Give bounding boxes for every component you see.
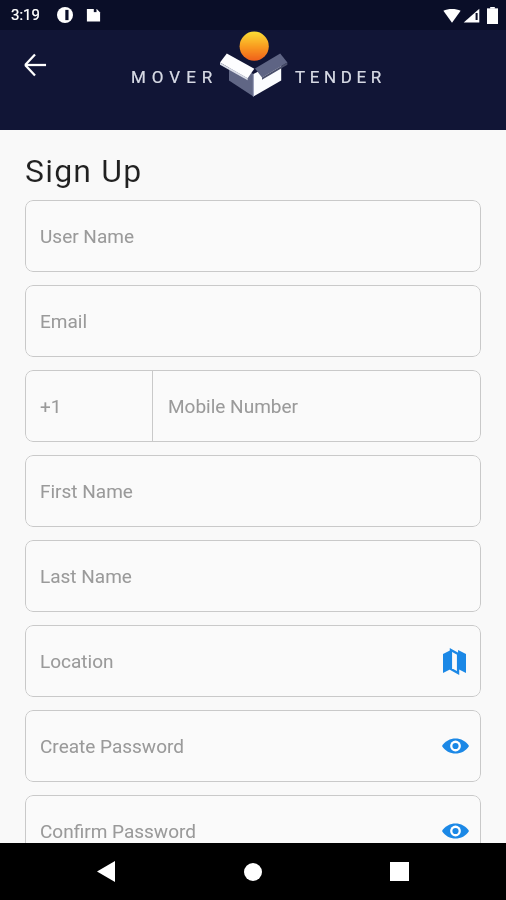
- staticText: +1: [40, 395, 62, 417]
- button[interactable]: Back: [15, 45, 55, 85]
- button[interactable]: Pick location on map: [439, 646, 469, 676]
- button[interactable]: Email: [25, 285, 481, 357]
- button[interactable]: Home: [223, 843, 283, 900]
- staticText: Last Name: [40, 565, 469, 587]
- button[interactable]: Create Password: [25, 710, 481, 782]
- button[interactable]: Recent apps: [369, 843, 429, 900]
- staticText: Email: [40, 310, 469, 332]
- button[interactable]: Location: [25, 625, 481, 697]
- staticText: Mobile Number: [168, 395, 298, 417]
- staticText: Confirm Password: [40, 820, 441, 842]
- staticText: Sign Up: [25, 152, 143, 190]
- button[interactable]: First Name: [25, 455, 481, 527]
- staticText: TENDER: [295, 67, 386, 87]
- button[interactable]: Show password: [441, 816, 469, 846]
- staticText: First Name: [40, 480, 469, 502]
- button[interactable]: User Name: [25, 200, 481, 272]
- staticText: User Name: [40, 225, 469, 247]
- button[interactable]: Show password: [441, 731, 469, 761]
- button[interactable]: +1: [25, 370, 152, 442]
- staticText: Create Password: [40, 735, 441, 757]
- button[interactable]: Confirm Password: [25, 795, 481, 867]
- staticText: Location: [40, 650, 439, 672]
- staticText: 3:19: [11, 6, 40, 24]
- button[interactable]: Back: [76, 843, 136, 900]
- staticText: MOVER: [131, 67, 219, 87]
- button[interactable]: Last Name: [25, 540, 481, 612]
- button[interactable]: Mobile Number: [153, 370, 481, 442]
